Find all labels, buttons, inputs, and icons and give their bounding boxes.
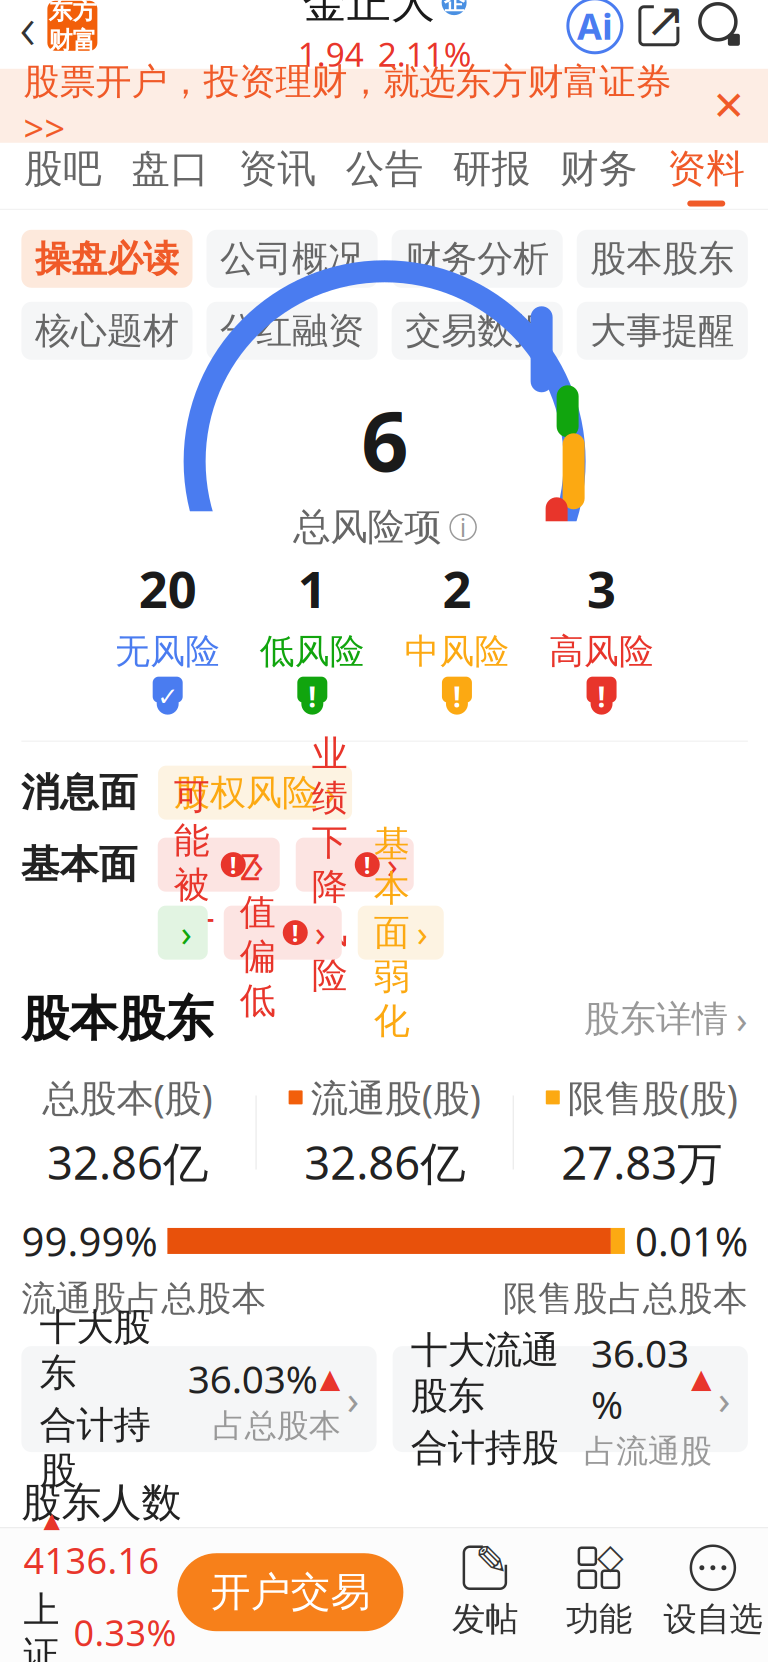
button[interactable]: 十大股东 [21,1346,377,1452]
staticText: › [181,909,192,956]
staticText: 高风险 [549,630,654,673]
staticText: 十大流通股东 [411,1327,559,1419]
button[interactable]: Z值偏低 [224,906,342,960]
button[interactable]: 交易数据 [392,302,563,360]
staticText: ▲ [43,1508,59,1532]
staticText: ↗ [645,0,685,47]
button[interactable]: 财务分析 [392,230,563,288]
button[interactable]: 分享 [628,0,690,61]
staticText: 开户交易 [210,1568,370,1617]
button[interactable]: AI 助手 [562,0,628,61]
staticText: ◇ [597,1537,624,1576]
staticText: 财务 [560,145,638,192]
staticText: 股权风险 [174,770,318,815]
staticText: 36.03% [591,1327,689,1430]
staticText: 功能 [566,1599,632,1640]
staticText: ! [230,849,237,881]
button[interactable]: ◇ [542,1536,656,1648]
staticText: 流通股(股) [311,1073,481,1122]
staticText: › [387,841,398,888]
staticText: 公司概况 [220,237,364,281]
staticText: 1.94 [298,32,364,76]
staticText: 金正大 [303,0,435,30]
staticText: 无风险 [115,630,220,673]
button[interactable]: 研报 [438,143,545,209]
staticText: Ai [577,2,613,50]
staticText: 3 [587,555,616,622]
button[interactable]: 返回 [0,0,109,69]
staticText: 财务分析 [405,237,549,281]
button[interactable]: 分红融资 [206,302,378,360]
button[interactable]: 大事提醒 [577,302,748,360]
staticText: 1 [298,555,327,622]
staticText: 发帖 [452,1599,518,1640]
staticText: 限售股(股) [568,1073,738,1122]
button[interactable]: 股票开户，投资理财，就选东方财富证券>> [0,69,768,143]
button[interactable]: 核心题材 [21,302,192,360]
button[interactable]: 股权风险 [158,766,352,820]
staticText: › [347,1372,359,1426]
staticText: 操盘必读 [35,237,179,281]
staticText: 股东详情 [584,997,728,1041]
staticText: ‹ [19,0,35,66]
staticText: ▲ [691,1363,712,1394]
staticText: 中风险 [404,630,509,673]
staticText: 资讯 [238,145,316,192]
staticText: › [325,769,336,816]
staticText: 股票开户，投资理财，就选东方财富证券>> [23,60,671,152]
staticText: ! [292,917,299,949]
staticText: › [736,994,748,1044]
staticText: 上证 [23,1588,59,1662]
staticText: 股吧 [24,145,102,192]
button[interactable]: 资料 [653,143,760,209]
staticText: 财富 [48,26,96,55]
staticText: 总股本(股) [42,1073,212,1122]
staticText: ✕ [712,83,746,128]
button[interactable]: 资讯 [224,143,331,209]
button[interactable]: 财务费用占比偏高 [158,906,208,960]
staticText: 6 [361,384,408,494]
staticText: 十大股东 [39,1304,150,1396]
button[interactable]: ✎ [428,1536,542,1648]
staticText: 基本面 [21,841,138,888]
staticText: 占流通股 [584,1432,712,1471]
button[interactable]: 盘口 [117,143,224,209]
staticText: 股本股东 [590,237,734,281]
button[interactable]: 开户交易 [177,1553,403,1631]
staticText: 流通股占总股本 [21,1277,266,1320]
staticText: 2.11% [378,32,472,76]
button[interactable]: 业绩下降风险 [296,838,414,892]
staticText: Z值偏低 [240,842,276,1023]
staticText: 公告 [346,145,424,192]
staticText: 设自选 [663,1599,762,1640]
button[interactable]: 可能被ST [158,838,280,892]
button[interactable]: 基本面弱化 [358,906,444,960]
button[interactable]: 公司概况 [206,230,378,288]
staticText: 资料 [667,145,745,192]
staticText: 36.03% [188,1353,318,1404]
staticText: 0.33% [73,1608,176,1656]
staticText: 32.86亿 [304,1132,465,1192]
staticText: 总风险项 [293,504,441,550]
staticText: 大事提醒 [590,309,734,353]
button[interactable]: 搜索 [690,0,752,61]
button[interactable]: 股吧 [9,143,117,209]
staticText: 企 [444,0,465,16]
staticText: 合计持股 [411,1425,559,1471]
button[interactable]: 操盘必读 [21,230,192,288]
staticText: 交易数据 [405,309,549,353]
staticText: 核心题材 [35,309,179,353]
button[interactable]: 股东详情 [584,994,748,1044]
staticText: ✓ [157,682,178,711]
staticText: 消息面 [21,769,138,816]
staticText: 基本面弱化 [374,822,410,1043]
button[interactable]: 公告 [331,143,438,209]
staticText: ✎ [475,1538,509,1583]
button[interactable]: 股本股东 [577,230,748,288]
button[interactable]: 十大流通股东 [393,1346,748,1452]
staticText: 东方 [48,0,96,26]
button[interactable]: 设自选 [656,1536,768,1648]
button[interactable]: 财务 [545,143,653,209]
staticText: 4136.16 [23,1536,159,1584]
button[interactable]: ▲ [0,1528,177,1656]
